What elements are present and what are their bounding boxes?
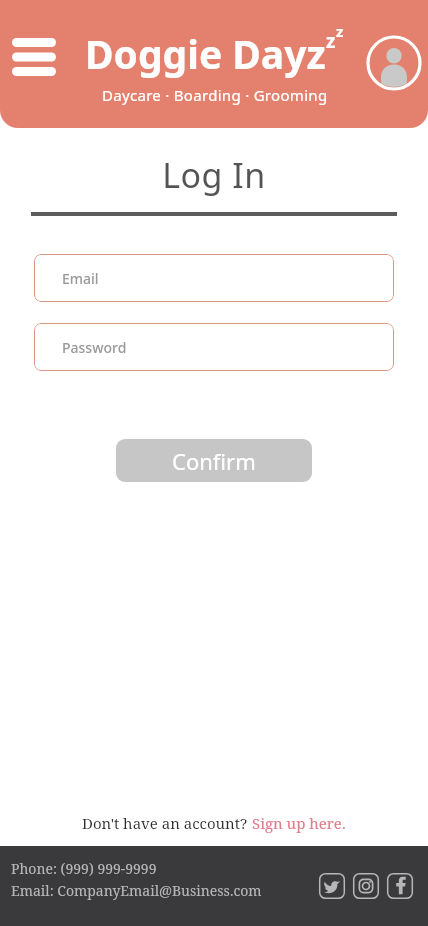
- staticText: Daycare · Boarding · Grooming: [102, 85, 328, 105]
- button[interactable]: Instagram: [353, 873, 379, 899]
- staticText: Password: [62, 338, 127, 357]
- button[interactable]: Sign up here.: [252, 813, 346, 833]
- staticText: z: [326, 28, 336, 54]
- button[interactable]: Email: [34, 254, 394, 302]
- staticText: Log In: [0, 152, 428, 198]
- staticText: Confirm: [172, 446, 256, 476]
- staticText: Phone: (999) 999-9999: [11, 859, 157, 878]
- button[interactable]: Password: [34, 323, 394, 371]
- button[interactable]: Twitter: [319, 873, 345, 899]
- staticText: z: [336, 21, 344, 41]
- button[interactable]: Facebook: [387, 873, 413, 899]
- staticText: Email: CompanyEmail@Business.com: [11, 881, 262, 900]
- staticText: Doggie Dayz: [85, 27, 326, 80]
- button[interactable]: Account: [366, 35, 422, 91]
- button[interactable]: Open menu: [6, 30, 62, 86]
- staticText: Don't have an account?: [82, 813, 252, 833]
- staticText: Sign up here.: [252, 813, 346, 833]
- button[interactable]: Confirm: [116, 439, 312, 482]
- staticText: Email: [62, 269, 99, 288]
